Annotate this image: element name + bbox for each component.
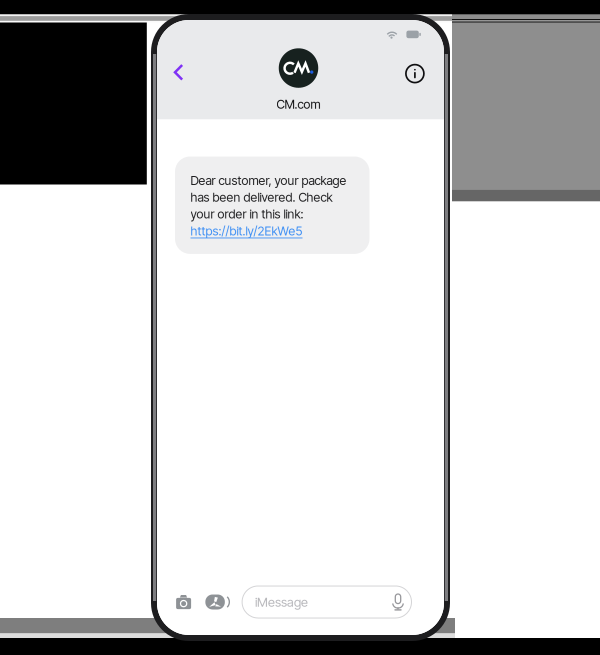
button[interactable]: CM.com: [238, 48, 358, 112]
staticText: your order in this link:: [190, 207, 303, 222]
button[interactable]: Back: [164, 57, 194, 87]
button[interactable]: Apps: [201, 590, 230, 614]
staticText: Dear customer, your package: [190, 173, 346, 188]
button[interactable]: Conversation details: [400, 59, 430, 89]
staticText: CM.com: [276, 97, 320, 112]
staticText: has been delivered. Check: [190, 190, 332, 205]
button[interactable]: iMessage: [242, 586, 411, 618]
button[interactable]: Camera: [172, 590, 196, 614]
staticText: https://bit.ly/2EkWe5: [190, 223, 302, 238]
staticText: iMessage: [255, 594, 308, 610]
